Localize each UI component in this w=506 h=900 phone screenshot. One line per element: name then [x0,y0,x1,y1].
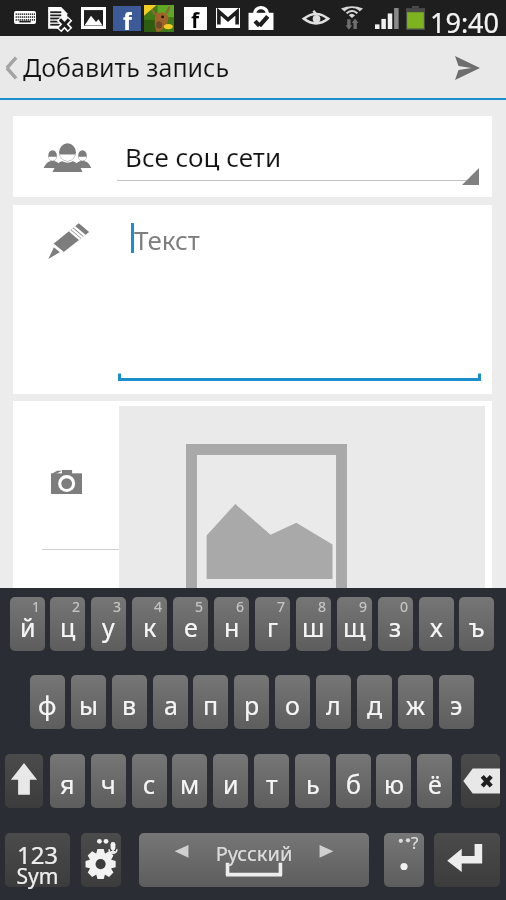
button[interactable]: х [419,597,454,651]
staticText: Sym [5,862,70,891]
button[interactable] [13,401,492,588]
button[interactable]: 6 [214,597,249,651]
staticText: ч [101,767,116,801]
staticText: 4 [154,597,163,616]
button[interactable]: Backspace [461,754,500,808]
button[interactable]: р [234,675,269,729]
button[interactable]: Shift [5,754,43,808]
button[interactable]: Symbols [5,833,70,887]
staticText: г [267,610,278,644]
staticText: f [191,6,200,29]
staticText: 123 [5,838,70,871]
staticText: ю [384,767,404,801]
staticText: я [60,767,75,801]
staticText: й [20,610,36,644]
staticText: м [180,767,200,801]
staticText: ь [306,767,320,801]
button[interactable]: 3 [91,597,126,651]
staticText: ц [60,610,76,644]
staticText: ъ [469,610,485,644]
staticText: ? [411,831,419,854]
button[interactable]: ы [71,675,106,729]
button[interactable]: д [357,675,392,729]
staticText: Русский [139,840,369,867]
staticText: а [164,688,178,722]
button[interactable]: ъ [459,597,494,651]
staticText: у [102,610,115,644]
button[interactable]: Enter [434,833,500,887]
staticText: н [224,610,240,644]
button[interactable]: с [132,754,167,808]
button[interactable]: 4 [132,597,167,651]
button[interactable]: о [275,675,310,729]
button[interactable]: а [153,675,188,729]
staticText: б [346,767,361,801]
staticText: 19:40 [430,4,500,40]
staticText: 5 [195,597,204,616]
staticText: 2 [72,597,81,616]
staticText: 8 [318,597,327,616]
button[interactable]: ь [295,754,330,808]
button[interactable]: Settings [81,833,121,887]
button[interactable]: ё [417,754,452,808]
staticText: з [389,610,402,644]
button[interactable]: б [336,754,371,808]
button[interactable]: Space [139,833,369,887]
button[interactable]: в [112,675,147,729]
button[interactable]: ф [30,675,65,729]
button[interactable]: Все соц сети [13,116,492,197]
staticText: о [285,688,300,722]
staticText: 9 [359,597,368,616]
staticText: л [326,688,341,722]
staticText: р [244,688,260,722]
button[interactable]: Send [428,36,506,100]
staticText: 7 [277,597,286,616]
staticText: Добавить запись [23,50,230,84]
staticText: 3 [113,597,122,616]
button[interactable]: ч [91,754,126,808]
button[interactable]: я [50,754,85,808]
button[interactable]: 5 [173,597,208,651]
staticText: д [367,688,383,722]
staticText: е [184,610,198,644]
staticText: х [430,610,443,644]
button[interactable]: л [316,675,351,729]
button[interactable]: т [254,754,289,808]
staticText: f [123,5,132,30]
staticText: к [143,610,157,644]
staticText: 1 [32,597,41,616]
staticText: п [203,688,219,722]
staticText: ш [302,610,325,644]
button[interactable]: 0 [378,597,413,651]
button[interactable]: 9 [337,597,372,651]
button[interactable]: Текст [13,205,492,394]
staticText: в [122,688,137,722]
button[interactable]: п [193,675,228,729]
button[interactable]: Добавить запись [0,36,506,100]
staticText: 6 [236,597,245,616]
staticText: щ [343,610,366,644]
staticText: т [266,767,278,801]
staticText: э [450,688,463,722]
staticText: ф [38,688,57,722]
staticText: Текст [134,222,200,257]
staticText: 0 [400,597,409,616]
button[interactable]: 1 [10,597,45,651]
button[interactable]: 7 [255,597,290,651]
staticText: и [223,767,239,801]
staticText: ы [79,688,98,722]
staticText: ж [406,688,425,722]
button[interactable]: 8 [296,597,331,651]
staticText: с [143,767,156,801]
button[interactable]: Period [384,833,424,887]
staticText: Все соц сети [125,139,282,174]
button[interactable]: ю [376,754,411,808]
button[interactable]: и [213,754,248,808]
button[interactable]: 2 [50,597,85,651]
button[interactable]: м [172,754,207,808]
button[interactable]: э [439,675,474,729]
staticText: ё [428,767,442,801]
button[interactable]: ж [398,675,433,729]
